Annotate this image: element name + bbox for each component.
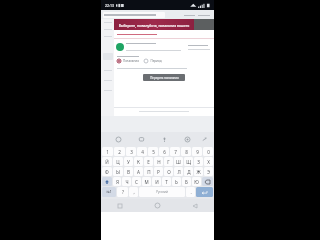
staticText: Ь	[175, 179, 178, 185]
button[interactable]: ?	[117, 187, 128, 197]
button[interactable]: Ф	[102, 167, 112, 176]
button[interactable]: У	[124, 157, 133, 166]
button[interactable]: Shift	[102, 177, 112, 186]
staticText: В	[127, 169, 130, 175]
button[interactable]: Symbols	[102, 187, 116, 197]
button[interactable]: И	[152, 177, 161, 186]
staticText: П	[147, 169, 151, 175]
button[interactable]: В	[124, 167, 133, 176]
button[interactable]: ,	[129, 187, 138, 197]
button[interactable]: Р	[154, 167, 163, 176]
staticText: Ы	[116, 169, 120, 175]
button[interactable]: Щ	[184, 157, 193, 166]
staticText: 1	[106, 149, 109, 155]
button[interactable]: Home	[138, 199, 176, 212]
staticText: Л	[177, 169, 181, 175]
button[interactable]	[103, 12, 165, 18]
button[interactable]: Е	[144, 157, 153, 166]
button[interactable]: Stickers	[130, 132, 153, 146]
button[interactable]: А	[134, 167, 143, 176]
button[interactable]: Я	[113, 177, 121, 186]
staticText: 2	[118, 149, 121, 155]
button[interactable]: Settings	[176, 132, 199, 146]
staticText: Выберите, пожалуйста, показания вашего с…	[114, 23, 194, 27]
button[interactable]: Ц	[113, 157, 123, 166]
button[interactable]: Русский	[139, 187, 185, 197]
staticText: ?	[122, 189, 124, 195]
staticText: Ю	[194, 179, 199, 185]
button[interactable]: Ш	[174, 157, 183, 166]
button[interactable]: 5	[148, 147, 158, 156]
staticText: Т	[165, 179, 168, 185]
button[interactable]: П	[144, 167, 153, 176]
button[interactable]: Ю	[192, 177, 201, 186]
staticText: Д	[187, 169, 191, 175]
staticText: 3	[130, 149, 133, 155]
button[interactable]: Х	[204, 157, 213, 166]
button[interactable]: Д	[184, 167, 193, 176]
button[interactable]: 4	[137, 147, 147, 156]
button[interactable]: Ч	[122, 177, 131, 186]
staticText: 0	[207, 149, 210, 155]
staticText: 8	[185, 149, 188, 155]
staticText: 7	[174, 149, 177, 155]
button[interactable]: Ы	[113, 167, 123, 176]
staticText: Ч	[125, 179, 129, 185]
staticText: Б	[185, 179, 188, 185]
button[interactable]: Б	[182, 177, 191, 186]
staticText: .	[190, 189, 192, 195]
button[interactable]: Recents	[101, 199, 138, 212]
button[interactable]: Н	[154, 157, 163, 166]
button[interactable]: Expand	[199, 132, 209, 146]
staticText: И	[155, 179, 159, 185]
button[interactable]: Ь	[172, 177, 181, 186]
staticText: Э	[207, 169, 210, 175]
button[interactable]: Л	[174, 167, 183, 176]
button[interactable]: Й	[102, 157, 112, 166]
button[interactable]: Enter	[196, 187, 213, 197]
staticText: Щ	[186, 159, 191, 165]
button[interactable]: 7	[170, 147, 180, 156]
button[interactable]: 0	[203, 147, 213, 156]
staticText: 9	[196, 149, 199, 155]
button[interactable]: Voice input	[153, 132, 176, 146]
button[interactable]: .	[186, 187, 195, 197]
button[interactable]: 3	[126, 147, 136, 156]
staticText: У	[127, 159, 130, 165]
staticText: Ф	[105, 169, 109, 175]
button[interactable]: Emoji	[106, 132, 130, 146]
staticText: Х	[207, 159, 210, 165]
staticText: 22:13	[105, 3, 114, 8]
button[interactable]: 6	[159, 147, 169, 156]
staticText: Период	[150, 59, 162, 63]
button[interactable]: Передать показания	[143, 74, 185, 81]
button[interactable]: Э	[204, 167, 213, 176]
button[interactable]: С	[132, 177, 141, 186]
button[interactable]: Ж	[194, 167, 203, 176]
button[interactable]: 1	[102, 147, 113, 156]
button[interactable]: 2	[114, 147, 125, 156]
button[interactable]: Back	[176, 199, 214, 212]
button[interactable]: Backspace	[202, 177, 213, 186]
button[interactable]: Г	[164, 157, 173, 166]
button[interactable]: Т	[162, 177, 171, 186]
button[interactable]: Menu	[182, 12, 196, 18]
button[interactable]: З	[194, 157, 203, 166]
button[interactable]: Показания	[117, 59, 139, 63]
button[interactable]: More	[196, 12, 212, 18]
staticText: Ш	[176, 159, 181, 165]
button[interactable]: К	[134, 157, 143, 166]
button[interactable]: М	[142, 177, 151, 186]
staticText: З	[197, 159, 200, 165]
button[interactable]: 8	[181, 147, 191, 156]
button[interactable]: 9	[192, 147, 202, 156]
staticText: О	[167, 169, 171, 175]
staticText: Ж	[196, 169, 201, 175]
button[interactable]	[126, 46, 181, 51]
staticText: 4	[141, 149, 144, 155]
staticText: Передать показания	[150, 76, 179, 80]
staticText: Русский	[156, 190, 168, 194]
button[interactable]: Период	[144, 59, 162, 63]
button[interactable]: О	[164, 167, 173, 176]
